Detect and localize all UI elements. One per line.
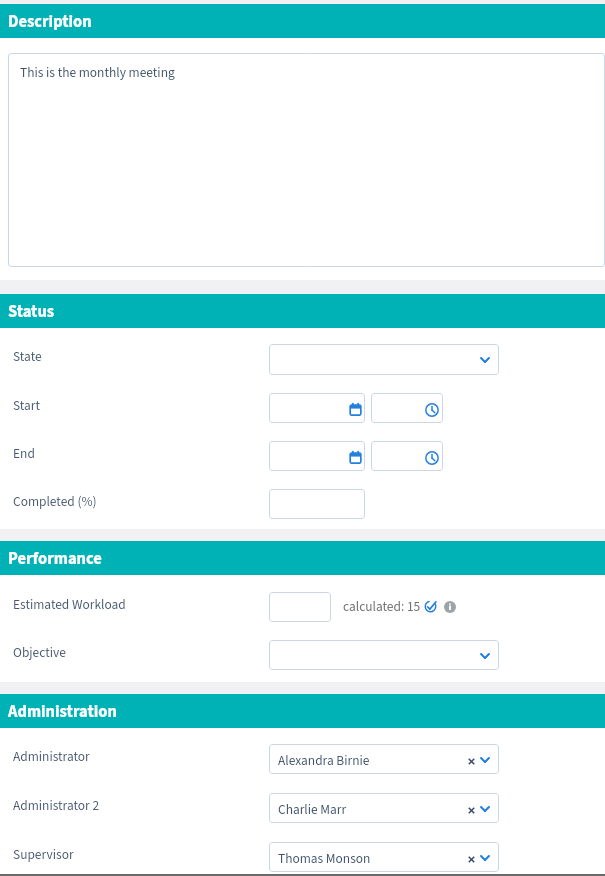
staticText: Charlie Marr: [278, 800, 347, 819]
button[interactable]: Apply calculated value: [424, 600, 437, 614]
button[interactable]: Pick end date: [269, 441, 365, 471]
button[interactable]: Administrator: [269, 744, 499, 774]
staticText: Start: [13, 396, 40, 415]
staticText: Administrator: [13, 747, 90, 766]
staticText: Thomas Monson: [278, 849, 371, 868]
staticText: calculated: 15: [343, 597, 421, 616]
staticText: Administration: [8, 700, 117, 723]
button[interactable]: Pick start date: [269, 393, 365, 423]
button[interactable]: Status: [0, 294, 605, 328]
staticText: Completed (%): [13, 492, 97, 511]
staticText: Alexandra Birnie: [278, 751, 370, 770]
button[interactable]: Administration: [0, 694, 605, 728]
staticText: Performance: [8, 547, 102, 570]
button[interactable]: More information: [444, 601, 456, 614]
staticText: Description: [8, 10, 92, 33]
staticText: This is the monthly meeting: [20, 63, 175, 82]
staticText: Administrator 2: [13, 796, 100, 815]
button[interactable]: Pick end time: [371, 441, 443, 471]
button[interactable]: Objective: [269, 640, 499, 670]
button[interactable]: Supervisor: [269, 842, 499, 872]
button[interactable]: Estimated workload: [269, 592, 331, 622]
button[interactable]: State: [269, 344, 499, 375]
button[interactable]: Administrator 2: [269, 793, 499, 823]
staticText: State: [13, 347, 42, 366]
staticText: End: [13, 444, 35, 463]
button[interactable]: Description: [0, 4, 605, 38]
staticText: Objective: [13, 643, 66, 662]
button[interactable]: Completed percent: [269, 489, 365, 519]
button[interactable]: This is the monthly meeting: [8, 53, 605, 267]
staticText: Status: [8, 300, 55, 323]
button[interactable]: Performance: [0, 541, 605, 575]
button[interactable]: Pick start time: [371, 393, 443, 423]
staticText: Supervisor: [13, 845, 74, 864]
staticText: Estimated Workload: [13, 595, 126, 614]
